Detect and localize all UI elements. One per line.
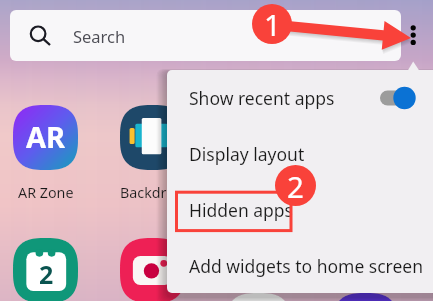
staticText: AR [26,117,66,156]
button[interactable]: More options [404,16,423,54]
staticText: Show recent apps [189,86,335,110]
button[interactable]: Gallery [333,293,398,301]
staticText: 1 [264,4,281,44]
other: Step 2 [275,165,316,206]
button[interactable]: Backdrops [120,105,185,170]
button[interactable]: Add widgets to home screen [167,238,433,293]
button[interactable]: Show recent apps [167,70,433,126]
button[interactable]: Display layout [167,126,433,182]
button[interactable]: Calendar [13,238,78,301]
button[interactable]: Camera [120,238,185,301]
staticText: Hidden apps [189,198,293,222]
button[interactable]: Play Store [226,293,291,301]
button[interactable]: Hidden apps [167,182,433,238]
staticText: AR Zone [18,183,74,202]
staticText: Add widgets to home screen [189,254,424,278]
staticText: Search [73,25,126,47]
button[interactable]: Search [10,10,401,61]
other: Step 1 [252,4,292,44]
button[interactable]: AR Zone [13,105,78,170]
staticText: 2 [39,257,54,291]
staticText: Display layout [189,142,305,166]
staticText: Backdrops [120,183,185,202]
staticText: 2 [287,166,304,206]
